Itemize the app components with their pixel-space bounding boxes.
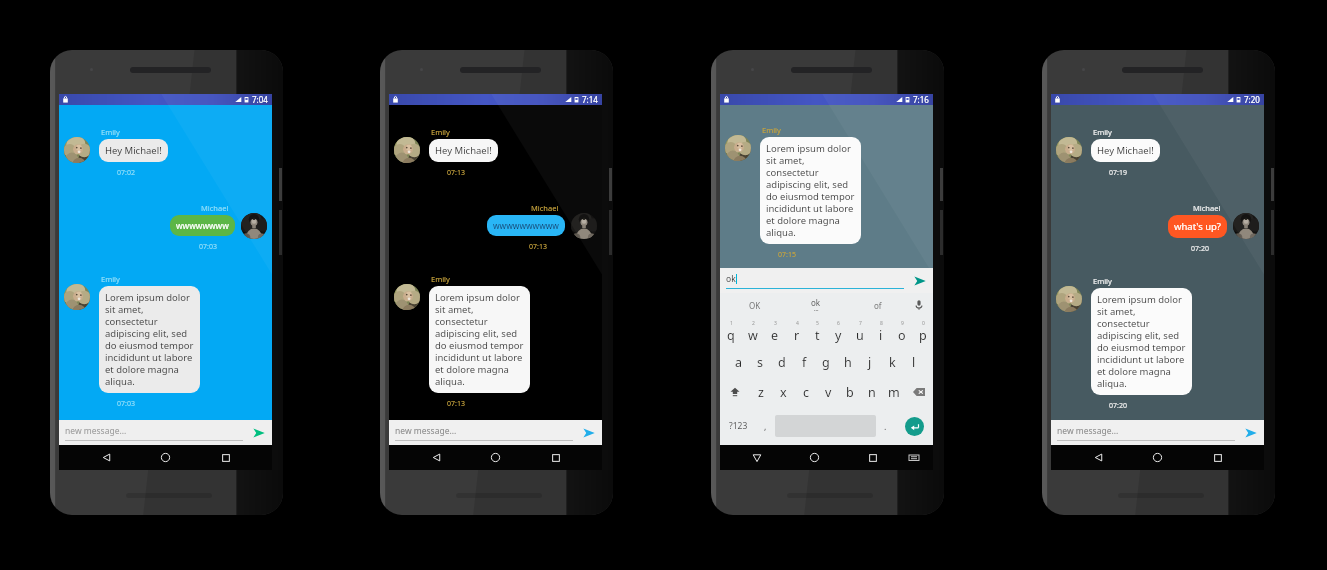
button[interactable]: new message...	[65, 425, 243, 441]
button[interactable]: Lorem ipsum dolor sit amet, consectetur …	[99, 286, 200, 393]
staticText: 07:15	[778, 250, 796, 260]
button[interactable]: 8	[870, 317, 891, 347]
button[interactable]: k	[881, 347, 903, 377]
button[interactable]: Back	[94, 445, 119, 470]
button[interactable]: Home	[483, 445, 508, 470]
staticText: c	[803, 384, 810, 401]
button[interactable]: Back	[1086, 445, 1111, 470]
staticText: u	[856, 327, 864, 344]
button[interactable]: Back	[744, 445, 769, 470]
staticText: f	[802, 354, 807, 371]
button[interactable]: Recents	[213, 445, 238, 470]
button[interactable]: wwwwwwwwww	[487, 215, 565, 236]
button[interactable]: h	[837, 347, 859, 377]
staticText: of	[874, 300, 882, 311]
button[interactable]: 9	[891, 317, 912, 347]
button[interactable]: j	[859, 347, 881, 377]
button[interactable]: Hey Michael!	[429, 139, 498, 162]
button[interactable]: new message...	[1057, 425, 1235, 441]
button[interactable]: l	[903, 347, 925, 377]
staticText: OK	[749, 300, 761, 311]
button[interactable]: 6	[828, 317, 849, 347]
button[interactable]: Hey Michael!	[99, 139, 168, 162]
button[interactable]: m	[883, 377, 905, 407]
staticText: new message...	[395, 425, 457, 437]
button[interactable]: a	[728, 347, 749, 377]
staticText: m	[888, 384, 900, 401]
button[interactable]: ?123	[720, 407, 756, 445]
button[interactable]: f	[793, 347, 815, 377]
button[interactable]: Lorem ipsum dolor sit amet, consectetur …	[429, 286, 530, 393]
staticText: Emily	[1093, 276, 1112, 286]
button[interactable]: Home	[153, 445, 178, 470]
button[interactable]: g	[815, 347, 837, 377]
button[interactable]: Enter	[895, 407, 933, 445]
button[interactable]: z	[749, 377, 772, 407]
staticText: wwwwwwww	[176, 220, 229, 231]
button[interactable]: Lorem ipsum dolor sit amet, consectetur …	[1091, 288, 1192, 395]
button[interactable]: n	[861, 377, 883, 407]
button[interactable]: v	[817, 377, 839, 407]
button[interactable]: b	[839, 377, 861, 407]
staticText: ok	[811, 297, 821, 308]
button[interactable]: 7	[849, 317, 870, 347]
staticText: q	[727, 327, 735, 344]
staticText: Emily	[431, 127, 450, 137]
button[interactable]: ok	[726, 273, 904, 289]
staticText: Emily	[1093, 127, 1112, 137]
button[interactable]: Home	[802, 445, 827, 470]
staticText: h	[844, 354, 852, 371]
staticText: .	[884, 420, 887, 432]
button[interactable]: Recents	[1205, 445, 1230, 470]
button[interactable]: Home	[1145, 445, 1170, 470]
staticText: o	[898, 327, 906, 344]
button[interactable]: Lorem ipsum dolor sit amet, consectetur …	[760, 137, 861, 244]
button[interactable]: 5	[807, 317, 828, 347]
staticText: Hey Michael!	[1097, 144, 1154, 157]
button[interactable]: Hide keyboard	[903, 447, 925, 469]
button[interactable]: 1	[720, 317, 742, 347]
staticText: b	[846, 384, 854, 401]
button[interactable]: Recents	[860, 445, 885, 470]
button[interactable]: 3	[764, 317, 786, 347]
button[interactable]: 4	[786, 317, 807, 347]
staticText: e	[771, 327, 779, 344]
staticText: y	[835, 327, 842, 344]
button[interactable]: x	[772, 377, 795, 407]
button[interactable]: what's up?	[1168, 215, 1227, 238]
button[interactable]: Send	[581, 425, 596, 440]
button[interactable]: 2	[742, 317, 764, 347]
button[interactable]: s	[749, 347, 771, 377]
staticText: 07:03	[117, 399, 135, 409]
button[interactable]: OK	[724, 300, 785, 311]
button[interactable]: ,	[756, 407, 775, 445]
button[interactable]: Backspace	[905, 377, 933, 407]
button[interactable]: c	[795, 377, 817, 407]
staticText: 7:20	[1244, 94, 1260, 105]
button[interactable]: 0	[912, 317, 933, 347]
button[interactable]: Voice input	[909, 300, 929, 310]
button[interactable]: new message...	[395, 425, 573, 441]
staticText: •••	[814, 308, 819, 313]
staticText: 07:20	[1109, 401, 1127, 411]
staticText: 07:02	[117, 168, 135, 178]
staticText: Emily	[101, 127, 120, 137]
button[interactable]: Send	[1243, 425, 1258, 440]
button[interactable]: wwwwwwww	[170, 215, 235, 236]
button[interactable]: Send	[251, 425, 266, 440]
button[interactable]: Back	[424, 445, 449, 470]
staticText: ,	[764, 420, 767, 432]
button[interactable]: of	[847, 300, 909, 311]
button[interactable]: .	[876, 407, 895, 445]
button[interactable]: Send	[912, 273, 927, 288]
button[interactable]: ok	[785, 297, 847, 313]
staticText: 1	[730, 320, 733, 327]
staticText: 5	[816, 320, 819, 327]
button[interactable]: Shift	[720, 377, 749, 407]
button[interactable]: d	[771, 347, 793, 377]
button[interactable]: Hey Michael!	[1091, 139, 1160, 162]
staticText: Hey Michael!	[435, 144, 492, 157]
staticText: 2	[752, 320, 755, 327]
button[interactable]: Recents	[543, 445, 568, 470]
